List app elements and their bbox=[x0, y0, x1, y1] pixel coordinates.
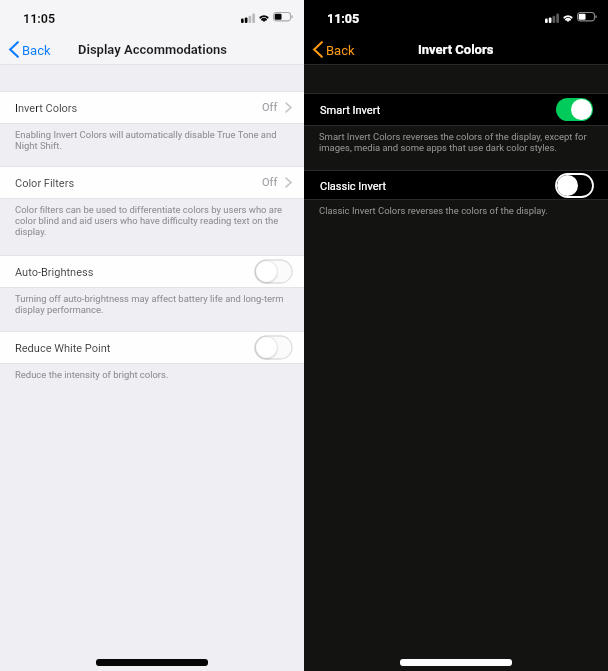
staticText: Invert Colors bbox=[418, 42, 494, 57]
button[interactable]: Back bbox=[0, 37, 61, 62]
button[interactable]: Classic Invert bbox=[304, 171, 608, 199]
staticText: Back bbox=[326, 43, 355, 58]
staticText: Enabling Invert Colors will automaticall… bbox=[15, 129, 291, 151]
button[interactable]: Invert Colors bbox=[0, 92, 304, 123]
staticText: Reduce White Point bbox=[15, 342, 111, 355]
button[interactable]: Reduce White Point bbox=[0, 332, 304, 363]
staticText: Smart Invert Colors reverses the colors … bbox=[319, 131, 595, 153]
staticText: Reduce the intensity of bright colors. bbox=[15, 369, 169, 380]
staticText: Auto-Brightness bbox=[15, 266, 94, 279]
staticText: Back bbox=[22, 43, 51, 58]
button[interactable]: Auto-Brightness bbox=[0, 256, 304, 287]
staticText: Turning off auto-brightness may affect b… bbox=[15, 293, 291, 315]
staticText: Display Accommodations bbox=[78, 42, 227, 57]
staticText: Classic Invert bbox=[320, 180, 387, 193]
staticText: Off bbox=[262, 101, 278, 114]
staticText: Off bbox=[262, 176, 278, 189]
staticText: Color filters can be used to differentia… bbox=[15, 204, 291, 237]
staticText: Invert Colors bbox=[15, 102, 78, 115]
staticText: Classic Invert Colors reverses the color… bbox=[319, 205, 548, 216]
button[interactable]: Color Filters bbox=[0, 167, 304, 198]
staticText: Color Filters bbox=[15, 177, 75, 190]
staticText: 11:05 bbox=[23, 11, 56, 26]
button[interactable]: Back bbox=[304, 37, 365, 62]
staticText: 11:05 bbox=[327, 11, 360, 26]
button[interactable]: Smart Invert bbox=[304, 94, 608, 125]
staticText: Smart Invert bbox=[320, 104, 381, 117]
